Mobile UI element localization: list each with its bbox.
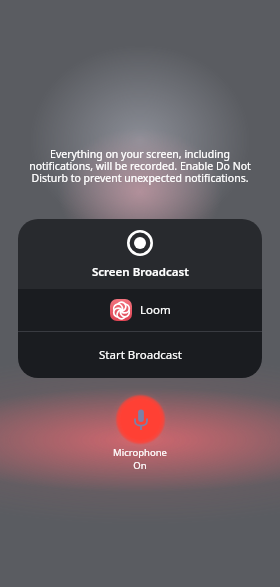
- button[interactable]: Microphone: [115, 394, 166, 445]
- staticText: Loom: [140, 302, 171, 318]
- button[interactable]: Start Broadcast: [18, 332, 262, 378]
- staticText: Screen Broadcast: [92, 264, 189, 280]
- staticText: Microphone: [113, 446, 167, 459]
- staticText: Everything on your screen, including not…: [22, 147, 258, 185]
- staticText: Start Broadcast: [99, 347, 182, 363]
- staticText: On: [133, 459, 147, 472]
- button[interactable]: Loom: [18, 289, 262, 331]
